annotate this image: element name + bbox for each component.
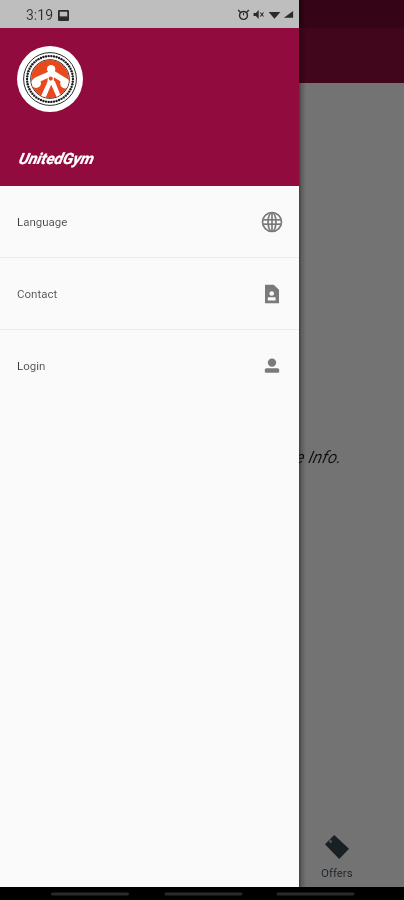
button[interactable]: Offers	[269, 825, 404, 887]
staticText: 3:19	[26, 7, 53, 23]
staticText: Please contact the gym for more Info.	[64, 447, 341, 467]
button[interactable]: Language	[0, 186, 299, 257]
staticText: Contact	[17, 287, 58, 300]
staticText: Language	[17, 215, 68, 228]
button[interactable]: Contact	[0, 258, 299, 329]
staticText: Login	[17, 359, 46, 372]
staticText: Offers	[321, 866, 353, 879]
staticText: UnitedGym	[18, 150, 93, 168]
button[interactable]: Login	[0, 330, 299, 401]
